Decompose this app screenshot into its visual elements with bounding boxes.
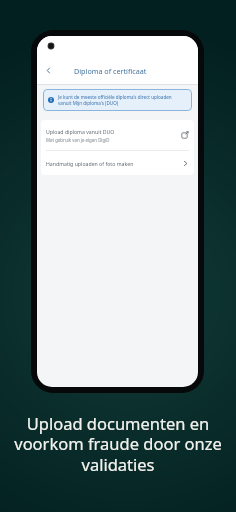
staticText: Met gebruik van je eigen DigiD	[46, 137, 110, 143]
staticText: Diploma of certificaat	[74, 66, 147, 76]
staticText: Upload documenten en voorkom fraude door…	[0, 412, 236, 476]
button[interactable]	[43, 65, 54, 76]
button[interactable]: Je kunt de meeste officiële diploma's di…	[43, 89, 192, 111]
staticText: Upload diploma vanuit DUO	[46, 128, 115, 135]
staticText: Je kunt de meeste officiële diploma's di…	[58, 94, 172, 107]
button[interactable]: Handmatig uploaden of foto maken	[41, 151, 194, 175]
button[interactable]: Upload diploma vanuit DUO	[41, 120, 194, 150]
staticText: Handmatig uploaden of foto maken	[46, 160, 182, 167]
